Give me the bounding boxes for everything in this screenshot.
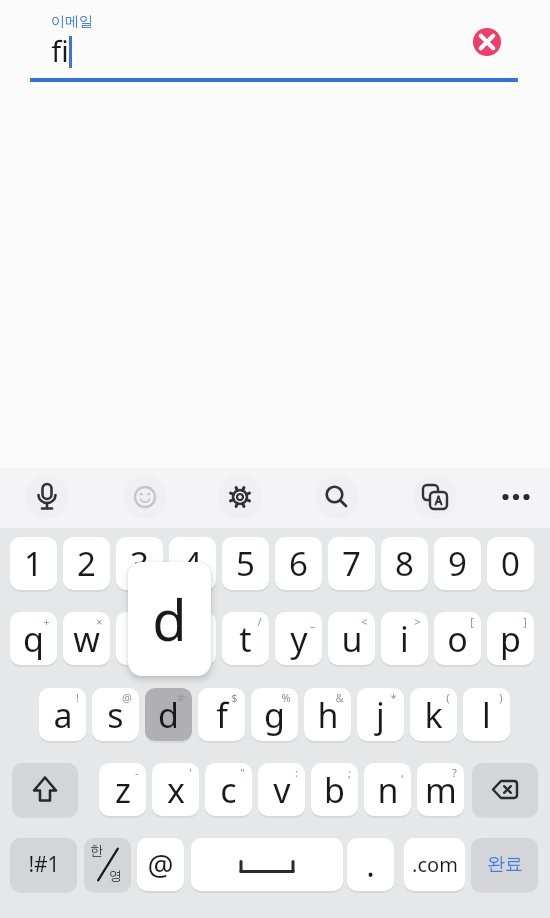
staticText: % <box>281 690 291 705</box>
button[interactable]: * <box>357 688 404 741</box>
button[interactable]: ( <box>410 688 457 741</box>
button[interactable] <box>12 763 78 816</box>
button[interactable]: . <box>347 838 394 891</box>
staticText: ; <box>348 765 351 780</box>
button[interactable]: 0 <box>487 537 534 590</box>
staticText: @ <box>147 845 174 884</box>
button[interactable]: / <box>222 612 269 665</box>
button[interactable]: - <box>99 763 146 816</box>
button[interactable]: !#1 <box>10 838 77 891</box>
button[interactable]: 9 <box>434 537 481 590</box>
staticText: y <box>290 616 308 662</box>
button[interactable] <box>413 475 457 519</box>
staticText: 8 <box>395 541 414 586</box>
button[interactable] <box>472 763 538 816</box>
staticText: g <box>264 692 285 738</box>
button[interactable]: > <box>381 612 428 665</box>
staticText: @ <box>122 690 132 705</box>
button[interactable]: ' <box>152 763 199 816</box>
staticText: s <box>107 692 124 738</box>
staticText: j <box>376 692 385 738</box>
button[interactable]: 2 <box>63 537 110 590</box>
staticText: t <box>239 616 252 662</box>
button[interactable]: _ <box>275 612 322 665</box>
staticText: c <box>220 767 237 813</box>
button[interactable] <box>494 475 538 519</box>
staticText: ) <box>499 690 503 705</box>
button[interactable]: × <box>63 612 110 665</box>
button[interactable]: 7 <box>328 537 375 590</box>
button[interactable] <box>218 475 262 519</box>
button[interactable]: $ <box>198 688 245 741</box>
staticText: 7 <box>342 541 361 586</box>
staticText: : <box>295 765 298 780</box>
button[interactable]: ? <box>417 763 464 816</box>
button[interactable]: ) <box>463 688 510 741</box>
staticText: ÷ <box>149 614 156 629</box>
button[interactable]: : <box>258 763 305 816</box>
staticText: ! <box>76 690 79 705</box>
staticText: + <box>43 614 50 629</box>
button[interactable]: @ <box>92 688 139 741</box>
staticText: !#1 <box>28 850 60 879</box>
button[interactable]: [ <box>434 612 481 665</box>
staticText: 4 <box>183 541 202 586</box>
staticText: 영 <box>109 867 122 883</box>
staticText: fi <box>51 31 69 70</box>
button[interactable]: % <box>251 688 298 741</box>
button[interactable]: < <box>328 612 375 665</box>
button[interactable]: " <box>205 763 252 816</box>
staticText: 1 <box>24 541 43 586</box>
button[interactable]: 8 <box>381 537 428 590</box>
staticText: " <box>240 765 245 780</box>
button[interactable]: 완료 <box>471 838 538 891</box>
staticText: 6 <box>289 541 308 586</box>
staticText: # <box>177 690 185 705</box>
staticText: .com <box>412 851 458 878</box>
button[interactable] <box>0 0 550 84</box>
staticText: f <box>216 692 228 738</box>
button[interactable] <box>315 475 359 519</box>
staticText: i <box>400 616 409 662</box>
button[interactable] <box>25 475 69 519</box>
button[interactable]: 6 <box>275 537 322 590</box>
button[interactable]: = <box>169 612 216 665</box>
button[interactable]: ÷ <box>116 612 163 665</box>
button[interactable]: + <box>10 612 57 665</box>
staticText: - <box>135 765 139 780</box>
button[interactable]: 4 <box>169 537 216 590</box>
button[interactable]: # <box>145 688 192 741</box>
button[interactable]: 한 <box>84 838 131 891</box>
button[interactable] <box>473 28 501 56</box>
button[interactable]: .com <box>404 838 465 891</box>
staticText: o <box>447 616 468 662</box>
button[interactable]: ! <box>39 688 86 741</box>
staticText: u <box>341 616 363 662</box>
button[interactable] <box>123 475 167 519</box>
button[interactable]: , <box>364 763 411 816</box>
staticText: $ <box>231 690 238 705</box>
staticText: n <box>377 767 399 813</box>
staticText: / <box>257 614 262 629</box>
staticText: 3 <box>130 541 149 586</box>
staticText: ' <box>189 765 192 780</box>
button[interactable] <box>191 838 343 891</box>
button[interactable]: 3 <box>116 537 163 590</box>
button[interactable]: ] <box>487 612 534 665</box>
staticText: 이메일 <box>51 13 93 31</box>
staticText: h <box>317 692 339 738</box>
button[interactable]: & <box>304 688 351 741</box>
staticText: d <box>158 692 179 738</box>
staticText: q <box>23 616 44 662</box>
button[interactable]: 5 <box>222 537 269 590</box>
staticText: [ <box>470 614 474 629</box>
staticText: x <box>167 767 185 813</box>
staticText: v <box>273 767 291 813</box>
button[interactable]: 1 <box>10 537 57 590</box>
button[interactable]: ; <box>311 763 358 816</box>
button[interactable]: @ <box>137 838 184 891</box>
staticText: d <box>152 581 187 657</box>
staticText: 5 <box>236 541 255 586</box>
staticText: ? <box>452 765 457 780</box>
